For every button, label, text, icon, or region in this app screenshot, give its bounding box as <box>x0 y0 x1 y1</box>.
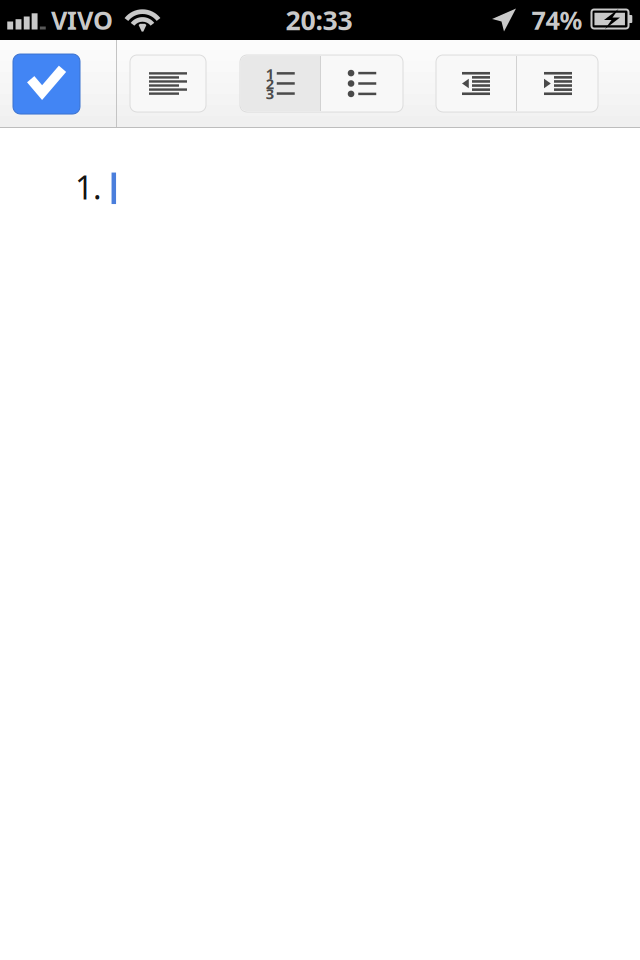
button[interactable]: Increase indent <box>517 55 598 112</box>
staticText: 74% <box>531 3 582 37</box>
button[interactable]: Bulleted list <box>321 55 403 112</box>
staticText: 1. <box>75 166 102 208</box>
staticText: VIVO <box>51 3 113 37</box>
button[interactable]: Numbered list <box>240 55 320 112</box>
button[interactable]: Decrease indent <box>436 55 516 112</box>
button[interactable]: Done <box>13 54 80 114</box>
staticText: 20:33 <box>285 2 352 38</box>
button[interactable]: Align <box>130 55 206 112</box>
